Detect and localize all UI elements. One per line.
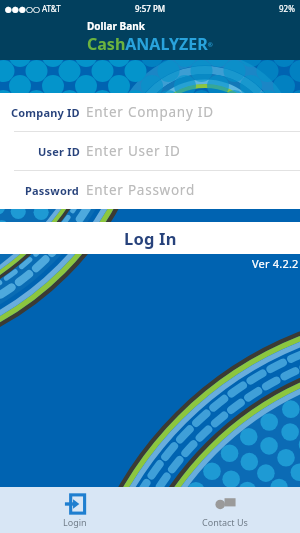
staticText: Enter User ID [86, 142, 181, 160]
button[interactable]: User ID [0, 132, 300, 170]
staticText: Enter Company ID [86, 103, 214, 121]
staticText: Dollar Bank [87, 19, 145, 33]
staticText: Company ID [11, 105, 80, 120]
staticText: User ID [38, 144, 80, 159]
button[interactable]: Company ID [0, 93, 300, 131]
button[interactable]: Password [0, 171, 300, 209]
staticText: 92% [279, 3, 295, 14]
staticText: CashANALYZER® [87, 33, 213, 55]
staticText: Log In [124, 227, 177, 249]
other: Login [63, 492, 87, 516]
staticText: Contact Us [202, 516, 248, 528]
button[interactable]: Contact Us [150, 487, 300, 533]
staticText: Login [63, 516, 87, 528]
button[interactable]: Login [0, 487, 150, 533]
staticText: ●●●○○ AT&T [5, 3, 61, 14]
other: Contact Us [213, 492, 237, 516]
button[interactable]: Log In [0, 222, 300, 254]
staticText: Enter Password [86, 181, 195, 199]
staticText: Password [25, 183, 80, 198]
staticText: Ver 4.2.2 [252, 256, 299, 271]
staticText: 9:57 PM [135, 3, 166, 14]
